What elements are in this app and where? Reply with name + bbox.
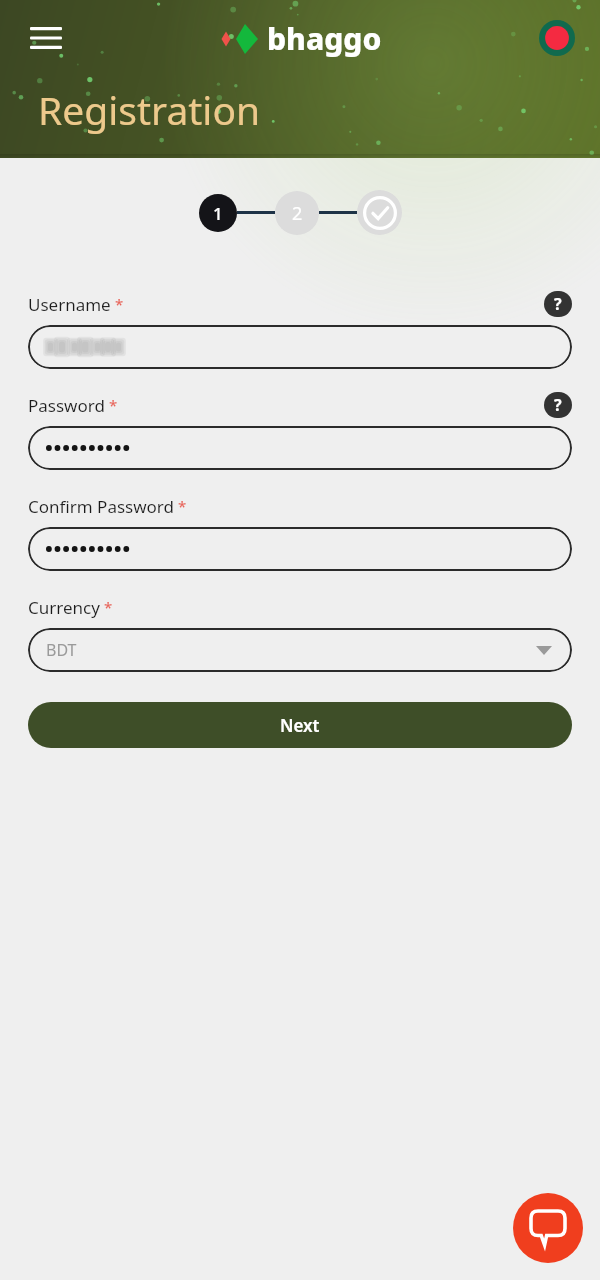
staticText: Next [280,714,320,737]
button[interactable]: Help for Username [544,291,572,317]
staticText: * [178,496,187,516]
staticText: * [104,597,113,617]
button[interactable]: Help for Password [544,392,572,418]
button[interactable]: bhaggo [219,18,382,59]
button[interactable]: Next [28,702,572,748]
button[interactable]: Menu [26,18,66,58]
button[interactable] [28,527,572,571]
staticText: 1 [213,202,223,225]
staticText: Currency [28,596,100,619]
staticText: Confirm Password [28,495,174,518]
staticText: * [109,395,118,415]
staticText: ? [554,293,562,315]
staticText: Registration [38,83,261,136]
button[interactable]: 2 [275,191,319,235]
staticText: bhaggo [267,18,382,59]
button[interactable]: Step 3 complete [357,190,402,235]
staticText: Username [28,293,111,316]
button[interactable] [28,426,572,470]
staticText: BDT [46,639,77,661]
staticText: * [115,294,124,314]
staticText: 2 [292,201,303,226]
staticText: Password [28,394,105,417]
staticText: ? [554,394,562,416]
button[interactable]: 1 [199,194,237,232]
button[interactable] [28,325,572,369]
button[interactable]: Language: Bangladesh [538,19,576,57]
button[interactable]: Open live chat [513,1193,583,1263]
button[interactable]: BDT [28,628,572,672]
